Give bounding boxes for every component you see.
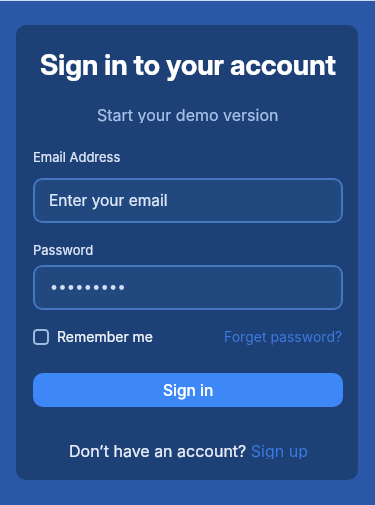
staticText: Email Address xyxy=(33,149,121,165)
button[interactable]: Forget password? xyxy=(224,328,343,345)
button[interactable] xyxy=(33,265,343,310)
staticText: Start your demo version xyxy=(97,105,279,123)
button[interactable]: Sign in xyxy=(33,373,343,407)
staticText: Sign in to your account xyxy=(40,48,336,82)
staticText: Remember me xyxy=(57,328,154,345)
button[interactable]: Don’t have an account? Sign up xyxy=(33,441,343,459)
staticText: Don’t have an account? Sign up xyxy=(69,441,308,459)
staticText: Password xyxy=(33,242,94,258)
staticText: Enter your email xyxy=(49,191,168,210)
button[interactable]: Enter your email xyxy=(33,178,343,223)
staticText: Forget password? xyxy=(224,328,343,345)
button[interactable]: Remember me xyxy=(33,328,154,345)
staticText: Sign in xyxy=(163,381,214,400)
